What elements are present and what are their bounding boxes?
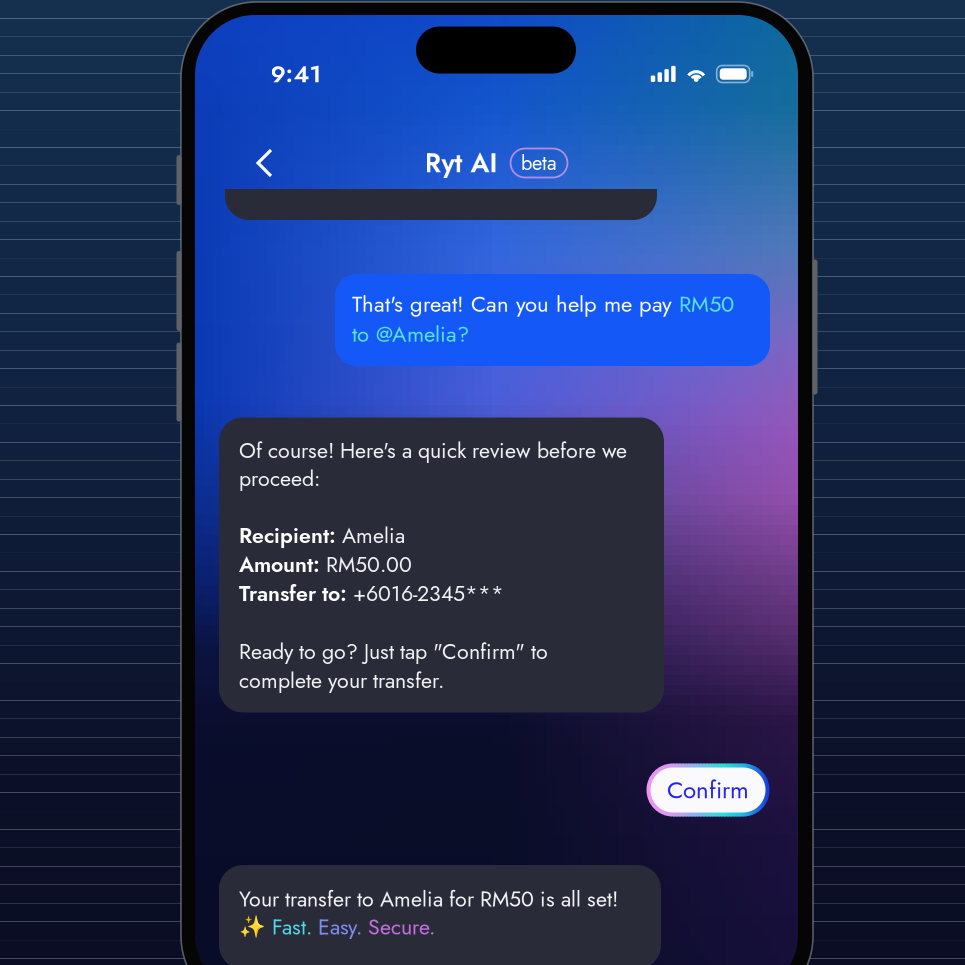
staticText: ✨ (239, 912, 272, 942)
staticText: Confirm (667, 773, 749, 807)
staticText: RM50 (679, 288, 734, 320)
staticText: proceed: (239, 463, 320, 494)
button[interactable]: Back (250, 140, 296, 186)
button[interactable]: Confirm (646, 763, 769, 816)
staticText: Of course! Here's a quick review before … (239, 435, 627, 466)
staticText: Ready to go? Just tap "Confirm" to (239, 636, 548, 667)
staticText: to @Amelia? (352, 318, 469, 350)
staticText: Secure. (362, 912, 435, 942)
staticText: Transfer to: (239, 578, 347, 609)
staticText: Amelia (336, 520, 405, 551)
staticText: beta (521, 148, 557, 177)
staticText: Your transfer to Amelia for RM50 is all … (239, 884, 618, 914)
staticText: RM50.00 (320, 549, 412, 580)
staticText: That's great! Can you help me pay (352, 288, 679, 320)
staticText: Amount: (239, 549, 320, 580)
staticText: Ryt AI (424, 144, 497, 182)
staticText: Recipient: (239, 520, 336, 551)
staticText: 9:41 (270, 57, 321, 91)
staticText: Easy. (312, 912, 362, 942)
staticText: +6016-2345*** (347, 578, 504, 609)
staticText: complete your transfer. (239, 665, 444, 696)
staticText: Fast. (272, 912, 312, 942)
